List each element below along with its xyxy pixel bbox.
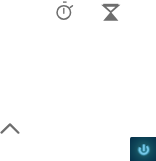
button[interactable]: Stopwatch — [54, 0, 76, 22]
button[interactable]: Power — [130, 137, 156, 161]
button[interactable]: Expand less — [0, 121, 21, 136]
button[interactable]: Hourglass — [102, 2, 120, 22]
